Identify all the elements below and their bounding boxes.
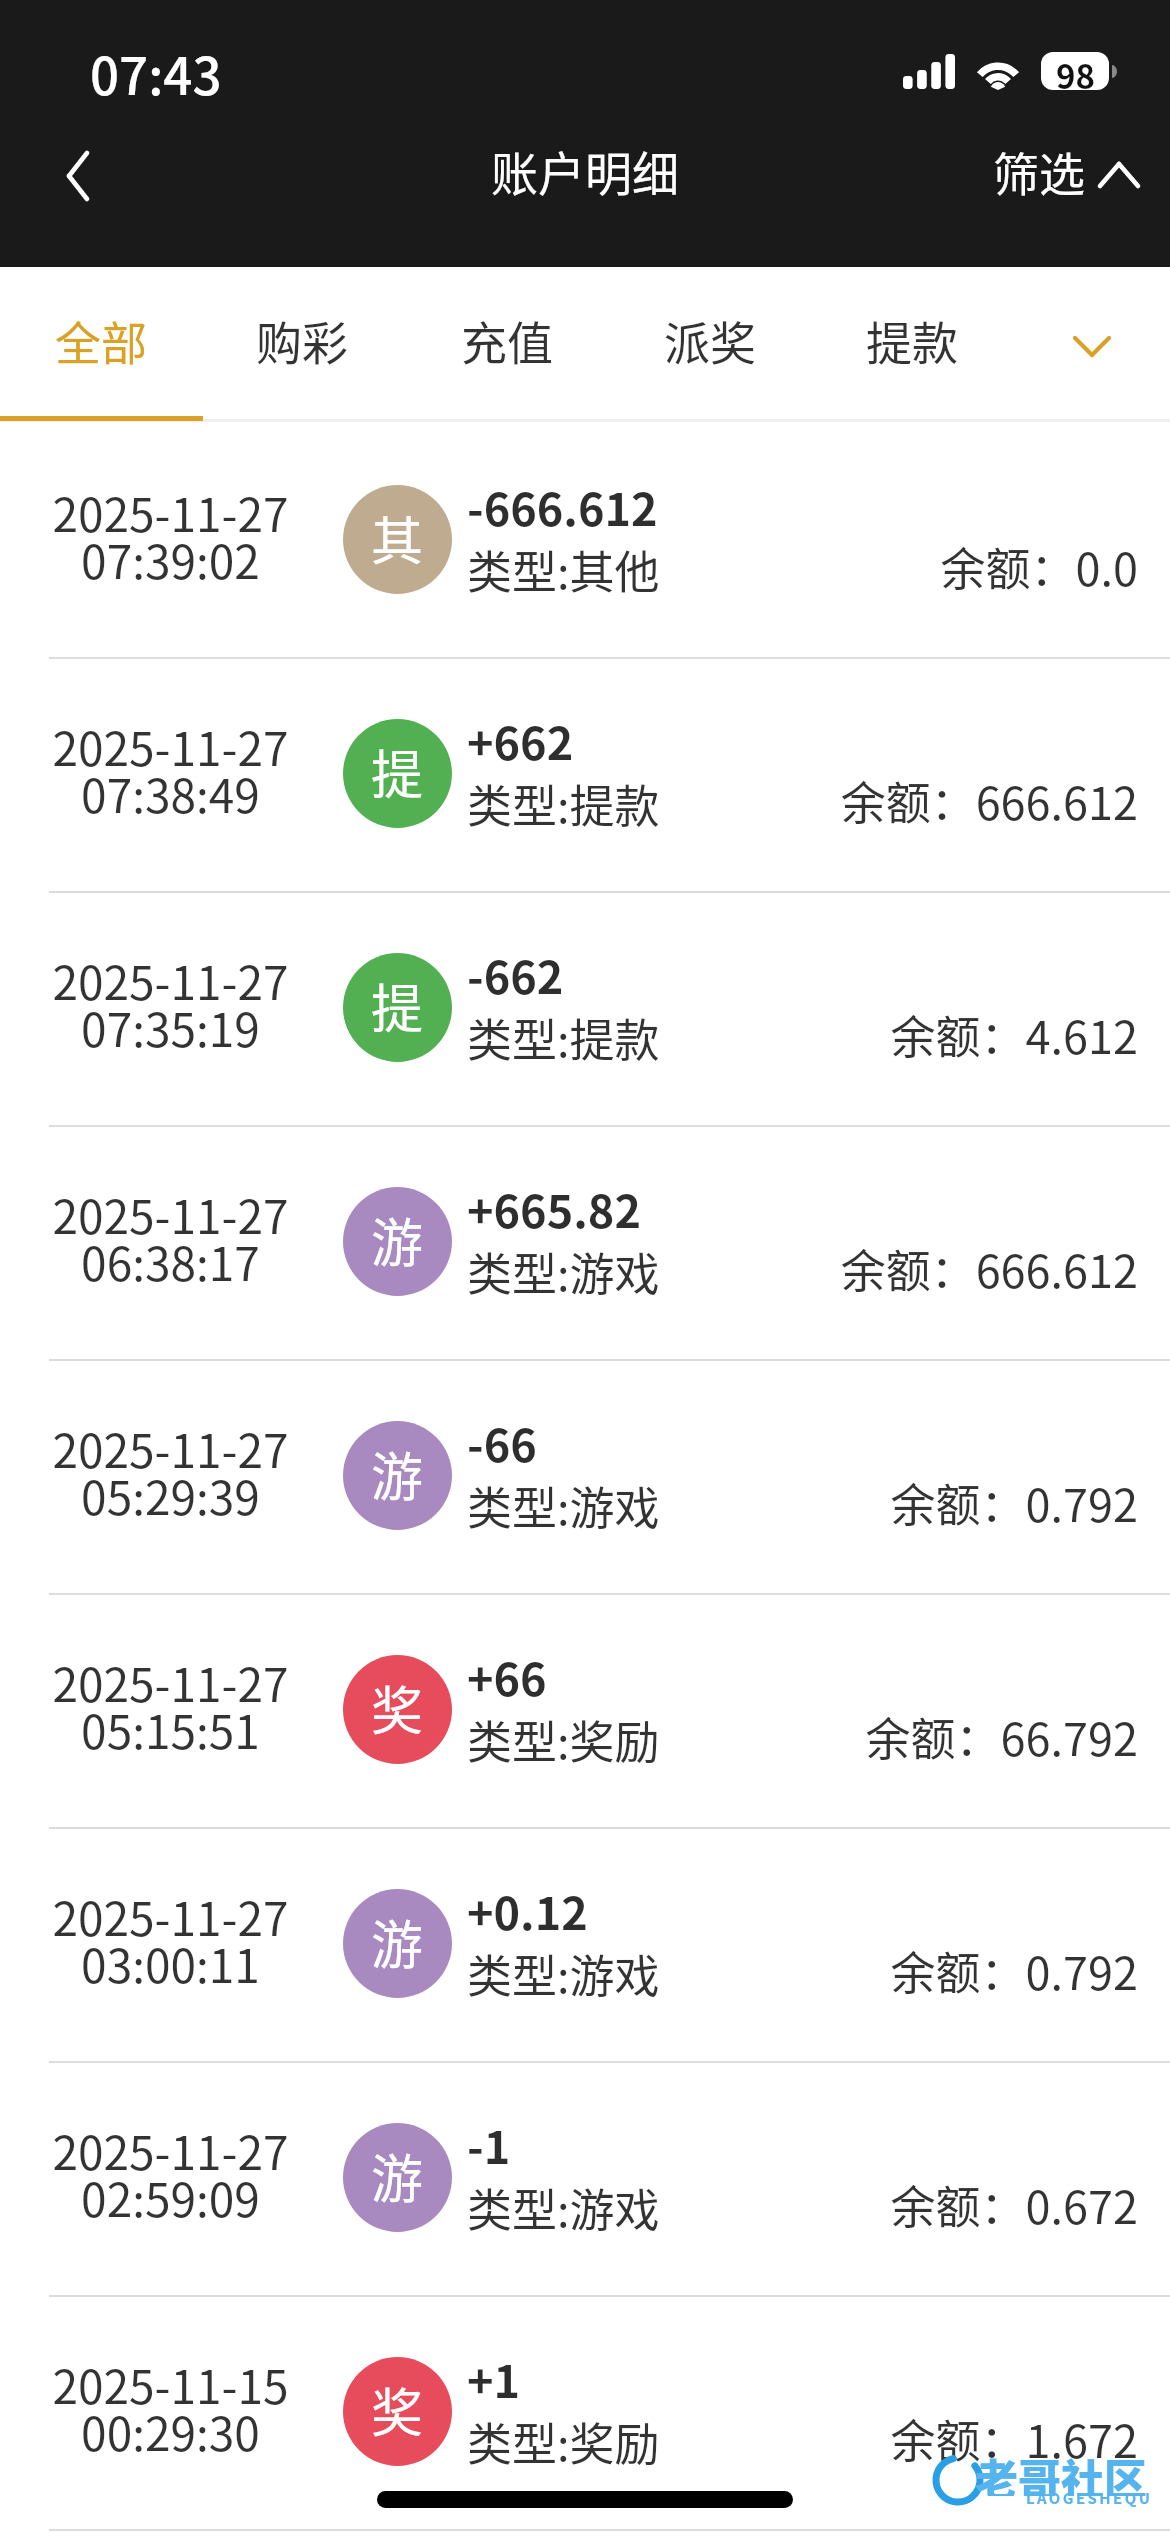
staticText: 余额：0.792 [638,1470,1138,1535]
staticText: 类型:游戏 [467,1239,660,1304]
staticText: 余额：1.672 [638,2406,1138,2471]
staticText: 类型:提款 [467,1005,660,1070]
staticText: -66 [467,1410,537,1475]
staticText: +662 [467,708,574,773]
staticText: +66 [467,1644,547,1709]
staticText: 余额：0.672 [638,2172,1138,2237]
button[interactable] [0,1359,1170,1593]
button[interactable]: 全部 [6,267,196,417]
staticText: 余额：666.612 [638,1236,1138,1301]
staticText: 98 [1056,52,1095,89]
staticText: 2025-11-27 [52,713,289,780]
staticText: 游 [371,1436,424,1511]
button[interactable]: Back [23,121,133,231]
staticText: 2025-11-27 [52,479,289,546]
staticText: LAOGESHEQU [1026,2487,1153,2509]
staticText: 充值 [461,307,553,374]
button[interactable] [0,1827,1170,2061]
staticText: 余额：666.612 [638,768,1138,833]
staticText: 派奖 [664,307,756,374]
staticText: 02:59:09 [81,2164,260,2231]
staticText: 2025-11-27 [52,2117,289,2184]
button[interactable] [0,423,1170,657]
button[interactable]: 充值 [412,267,602,417]
staticText: 提 [371,968,424,1043]
button[interactable]: 筛选 [983,119,1151,223]
staticText: 余额：66.792 [638,1704,1138,1769]
staticText: 07:43 [90,36,222,110]
staticText: 奖 [371,1670,424,1745]
staticText: +1 [467,2346,521,2411]
staticText: 购彩 [256,307,348,374]
button[interactable] [0,657,1170,891]
button[interactable]: 购彩 [207,267,397,417]
button[interactable] [0,1593,1170,1827]
staticText: 05:15:51 [81,1696,260,1763]
staticText: 2025-11-27 [52,1883,289,1950]
staticText: 05:29:39 [81,1462,260,1529]
button[interactable] [0,2061,1170,2295]
button[interactable]: More filters [1032,267,1152,417]
staticText: 2025-11-15 [52,2351,289,2418]
staticText: 03:00:11 [81,1930,260,1997]
staticText: 余额：0.0 [638,534,1138,599]
staticText: +665.82 [467,1176,641,1241]
staticText: 账户明细 [491,136,679,204]
staticText: -662 [467,942,564,1007]
staticText: 余额：4.612 [638,1002,1138,1067]
staticText: 类型:提款 [467,771,660,836]
staticText: -1 [467,2112,511,2177]
staticText: 奖 [371,2372,424,2447]
staticText: 全部 [55,307,147,374]
button[interactable] [0,2295,1170,2529]
staticText: 07:39:02 [81,526,260,593]
staticText: 类型:游戏 [467,1473,660,1538]
staticText: 类型:其他 [467,537,660,602]
staticText: 2025-11-27 [52,1181,289,1248]
staticText: 游 [371,2138,424,2213]
staticText: 2025-11-27 [52,1415,289,1482]
staticText: 游 [371,1904,424,1979]
staticText: 07:35:19 [81,994,260,1061]
staticText: 提 [371,734,424,809]
staticText: 游 [371,1202,424,1277]
staticText: 老哥社区 [975,2446,1147,2496]
staticText: 2025-11-27 [52,1649,289,1716]
staticText: 07:38:49 [81,760,260,827]
staticText: 类型:游戏 [467,2175,660,2240]
staticText: 00:29:30 [81,2398,260,2465]
button[interactable] [0,1125,1170,1359]
staticText: 筛选 [993,138,1085,205]
staticText: 类型:游戏 [467,1941,660,2006]
staticText: 余额：0.792 [638,1938,1138,2003]
staticText: -666.612 [467,474,658,539]
staticText: 其 [371,500,424,575]
staticText: 类型:奖励 [467,1707,660,1772]
staticText: 2025-11-27 [52,947,289,1014]
staticText: +0.12 [467,1878,588,1943]
staticText: 类型:奖励 [467,2409,660,2474]
button[interactable]: 派奖 [615,267,805,417]
button[interactable]: 提款 [817,267,1007,417]
staticText: 提款 [866,307,958,374]
button[interactable] [0,891,1170,1125]
staticText: 06:38:17 [81,1228,260,1295]
